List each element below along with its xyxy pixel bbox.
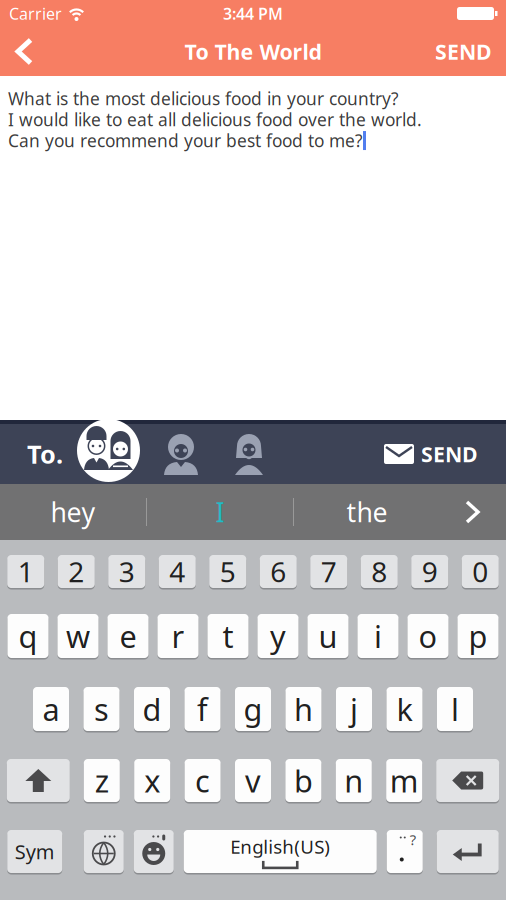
staticText: q [18,616,37,656]
staticText: h [294,689,313,729]
button[interactable]: 6 [260,554,297,589]
button[interactable]: More suggestions [440,484,506,540]
staticText: g [243,689,262,729]
staticText: 9 [422,553,438,590]
staticText: 5 [220,553,236,590]
staticText: hey [50,494,95,530]
button[interactable]: Space [184,829,377,874]
button[interactable]: t [207,613,248,659]
button[interactable]: 8 [361,554,398,589]
staticText: t [222,616,233,656]
staticText: 1 [18,553,34,590]
button[interactable]: Period [387,829,423,874]
button[interactable]: w [57,613,98,659]
staticText: the [346,494,387,530]
staticText: s [94,689,109,729]
button[interactable]: hey [0,484,146,540]
button[interactable]: j [336,686,372,732]
button[interactable]: I [147,484,293,540]
button[interactable]: z [84,758,120,803]
staticText: n [344,760,363,801]
button[interactable]: e [107,613,148,659]
staticText: 3:44 PM [223,3,283,24]
button[interactable]: g [235,686,271,732]
staticText: b [294,760,313,801]
staticText: d [142,689,161,729]
button[interactable]: 1 [7,554,44,589]
staticText: r [171,616,184,656]
button[interactable]: f [184,686,220,732]
button[interactable]: 4 [159,554,196,589]
staticText: Can you recommend your best food to me? [8,129,363,152]
staticText: To The World [184,37,321,66]
button[interactable]: Delete [436,758,499,803]
button[interactable]: v [235,758,271,803]
button[interactable]: 5 [209,554,246,589]
button[interactable]: Boy and girl [77,419,140,482]
button[interactable]: p [457,613,498,659]
button[interactable]: q [7,613,48,659]
button[interactable]: 0 [462,554,499,589]
button[interactable]: Shift [7,758,70,803]
button[interactable]: u [307,613,348,659]
button[interactable]: n [336,758,372,803]
button[interactable]: Boy [164,433,198,475]
staticText: 4 [169,553,185,590]
staticText: i [374,616,382,656]
staticText: v [245,760,261,801]
button[interactable]: Send [384,440,506,468]
button[interactable]: Symbols [7,829,62,874]
staticText: 3 [119,553,135,590]
button[interactable]: 9 [411,554,448,589]
button[interactable]: s [83,686,119,732]
button[interactable]: SEND [435,25,506,78]
button[interactable]: h [285,686,321,732]
staticText: j [350,689,358,729]
staticText: y [270,616,286,656]
staticText: e [119,616,136,656]
button[interactable]: r [157,613,198,659]
button[interactable]: c [185,758,221,803]
button[interactable]: i [357,613,398,659]
button[interactable]: l [437,686,473,732]
staticText: x [144,760,160,801]
staticText: m [390,760,419,801]
button[interactable]: Back [0,27,53,75]
button[interactable]: m [386,758,422,803]
staticText: l [451,689,459,729]
staticText: To. [27,437,63,471]
button[interactable]: a [33,686,69,732]
button[interactable]: 3 [108,554,145,589]
staticText: 8 [371,553,387,590]
staticText: SEND [421,440,478,468]
button[interactable]: y [257,613,298,659]
button[interactable]: Emoji [134,829,174,874]
staticText: I would like to eat all delicious food o… [8,108,422,131]
button[interactable]: the [294,484,440,540]
staticText: 7 [321,553,337,590]
staticText: a [42,689,59,729]
button[interactable]: k [386,686,422,732]
staticText: c [195,760,210,801]
staticText: 0 [472,553,488,590]
staticText: p [468,616,487,656]
button[interactable]: Language [84,829,124,874]
button[interactable]: d [134,686,170,732]
staticText: 6 [270,553,286,590]
button[interactable]: Girl [232,433,266,475]
button[interactable]: x [134,758,170,803]
button[interactable]: o [407,613,448,659]
button[interactable]: 7 [310,554,347,589]
staticText: Sym [15,838,55,865]
button[interactable]: b [285,758,321,803]
staticText: u [318,616,337,656]
staticText: What is the most delicious food in your … [8,87,399,110]
button[interactable]: 2 [58,554,95,589]
staticText: SEND [435,37,492,66]
staticText: w [66,616,90,656]
staticText: ? [410,830,416,849]
staticText: Carrier [9,3,62,24]
button[interactable]: Return [437,829,499,874]
staticText: I [215,494,224,530]
staticText: 2 [68,553,84,590]
